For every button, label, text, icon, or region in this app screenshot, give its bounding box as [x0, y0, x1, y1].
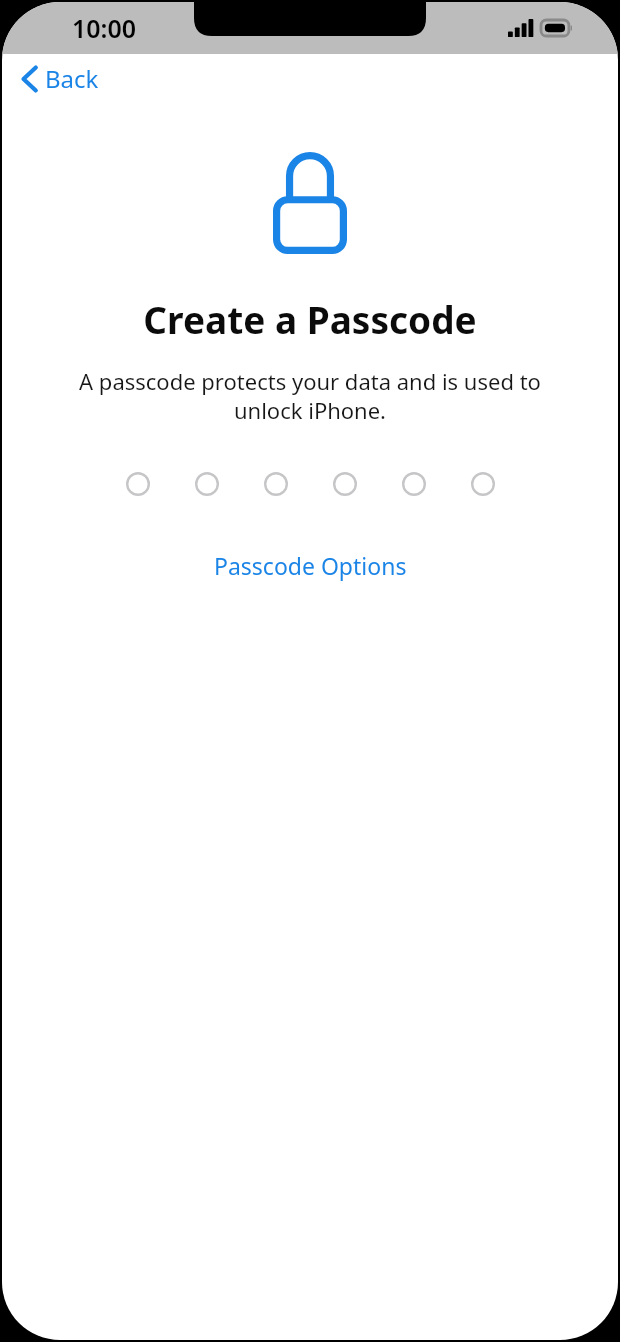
- button[interactable]: Back: [16, 56, 105, 101]
- staticText: Back: [45, 62, 99, 95]
- staticText: 10:00: [72, 11, 137, 45]
- staticText: A passcode protects your data and is use…: [60, 366, 560, 425]
- staticText: Passcode Options: [214, 550, 407, 581]
- button[interactable]: Passcode Options: [202, 544, 419, 587]
- staticText: Create a Passcode: [143, 294, 477, 344]
